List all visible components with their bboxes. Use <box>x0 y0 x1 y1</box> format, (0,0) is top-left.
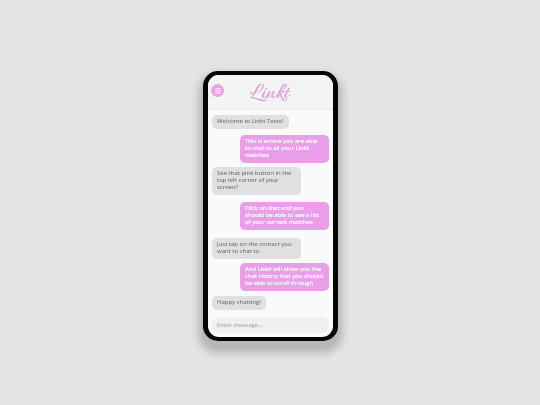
staticText: See that pink button in the top left cor… <box>217 169 296 191</box>
staticText: Welcome to Linkt Texts! <box>217 117 284 125</box>
staticText: Happy chatting! <box>217 298 261 306</box>
button[interactable]: Enter message... <box>211 317 329 333</box>
button[interactable]: This is where you are able to chat to al… <box>240 135 329 163</box>
button[interactable]: Just tap on the contact you want to chat… <box>212 238 301 259</box>
button[interactable]: And Linkt will show you the chat history… <box>240 263 329 291</box>
staticText: And Linkt will show you the chat history… <box>245 265 324 287</box>
button[interactable]: Menu <box>211 84 224 97</box>
button[interactable]: Click on that and you should be able to … <box>240 202 329 230</box>
staticText: Enter message... <box>217 321 263 329</box>
staticText: Linkt <box>250 80 290 109</box>
button[interactable]: Welcome to Linkt Texts! <box>212 115 289 129</box>
button[interactable]: See that pink button in the top left cor… <box>212 167 301 195</box>
button[interactable]: Happy chatting! <box>212 296 266 310</box>
staticText: Click on that and you should be able to … <box>245 204 324 226</box>
staticText: This is where you are able to chat to al… <box>245 137 324 159</box>
staticText: Just tap on the contact you want to chat… <box>217 240 296 255</box>
